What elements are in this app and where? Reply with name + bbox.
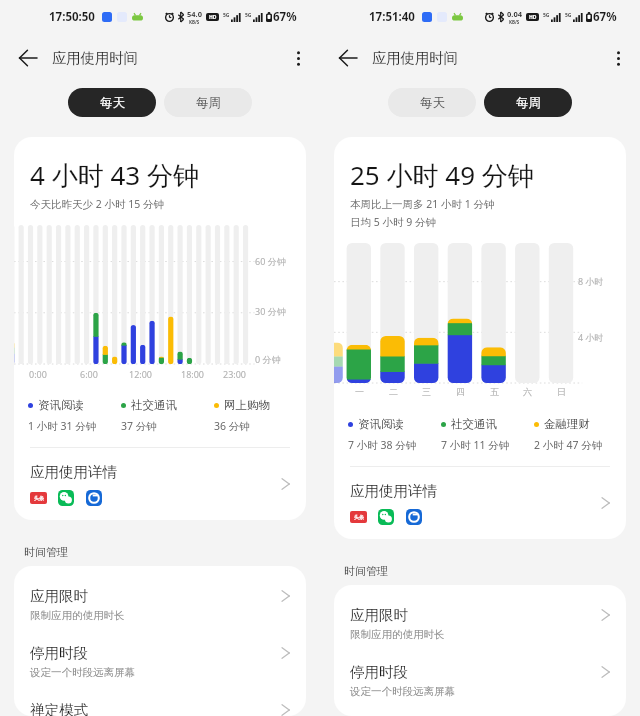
staticText: 5G <box>565 12 572 19</box>
staticText: 四 <box>456 386 465 397</box>
staticText: 8 小时 <box>578 275 604 287</box>
button[interactable]: 禅定模式 <box>14 680 306 716</box>
staticText: 应用使用时间 <box>372 49 458 67</box>
button[interactable]: 每周 <box>484 88 572 117</box>
staticText: 应用限时 <box>350 606 408 624</box>
staticText: 社交通讯 <box>131 398 177 412</box>
staticText: 30 分钟 <box>255 305 286 317</box>
staticText: 社交通讯 <box>451 417 497 431</box>
staticText: 0.04 <box>507 9 522 19</box>
staticText: 18:00 <box>181 368 205 380</box>
button[interactable]: 应用使用详情 <box>334 467 626 539</box>
button[interactable]: 应用限时 <box>334 585 626 642</box>
staticText: HD <box>209 14 217 21</box>
staticText: 12:00 <box>129 368 153 380</box>
staticText: 17:50:50 <box>49 9 95 25</box>
staticText: 54.0 <box>187 9 202 19</box>
staticText: 0:00 <box>29 368 47 380</box>
staticText: 五 <box>490 386 499 397</box>
button[interactable]: Back <box>11 41 45 75</box>
staticText: 本周比上一周多 21 小时 1 分钟 <box>350 197 495 211</box>
staticText: 头条 <box>34 495 44 501</box>
staticText: 金融理财 <box>544 417 590 431</box>
staticText: 每周 <box>196 95 221 111</box>
staticText: 资讯阅读 <box>38 398 84 412</box>
staticText: 三 <box>422 386 431 397</box>
staticText: 限制应用的使用时长 <box>30 609 125 622</box>
staticText: 5G <box>543 12 550 19</box>
staticText: 每天 <box>100 95 125 111</box>
staticText: KB/S <box>509 19 520 25</box>
staticText: 停用时段 <box>350 663 408 681</box>
staticText: 1 小时 31 分钟 <box>28 419 121 433</box>
staticText: 36 分钟 <box>214 419 306 433</box>
staticText: 应用使用详情 <box>30 463 117 481</box>
staticText: 设定一个时段远离屏幕 <box>350 685 455 698</box>
button[interactable]: 每天 <box>388 88 476 117</box>
staticText: 停用时段 <box>30 644 88 662</box>
staticText: 67% <box>273 9 297 25</box>
staticText: 17:51:40 <box>369 9 415 25</box>
staticText: 今天比昨天少 2 小时 15 分钟 <box>30 197 164 211</box>
staticText: 7 小时 11 分钟 <box>441 438 534 452</box>
staticText: 25 小时 49 分钟 <box>350 157 534 193</box>
staticText: 日 <box>557 386 566 397</box>
staticText: 0 分钟 <box>255 353 281 364</box>
staticText: 37 分钟 <box>121 419 214 433</box>
staticText: 六 <box>523 386 532 397</box>
staticText: 限制应用的使用时长 <box>350 628 445 641</box>
staticText: 设定一个时段远离屏幕 <box>30 666 135 679</box>
staticText: 5G <box>223 12 230 19</box>
button[interactable]: 每周 <box>164 88 252 117</box>
staticText: 67% <box>593 9 617 25</box>
staticText: 时间管理 <box>344 564 388 578</box>
button[interactable]: 应用使用详情 <box>14 448 306 520</box>
staticText: 网上购物 <box>224 398 270 412</box>
staticText: 应用限时 <box>30 587 88 605</box>
button[interactable]: 应用限时 <box>14 566 306 623</box>
staticText: 每周 <box>516 95 541 111</box>
button[interactable]: 停用时段 <box>14 623 306 680</box>
staticText: 禅定模式 <box>30 701 88 716</box>
staticText: 应用使用详情 <box>350 482 437 500</box>
button[interactable]: 停用时段 <box>334 642 626 699</box>
staticText: 应用使用时间 <box>52 49 138 67</box>
staticText: 4 小时 <box>578 331 604 343</box>
staticText: 6:00 <box>80 368 98 380</box>
staticText: 日均 5 小时 9 分钟 <box>350 215 436 229</box>
staticText: 一 <box>355 386 364 397</box>
staticText: 时间管理 <box>24 545 68 559</box>
staticText: 7 小时 38 分钟 <box>348 438 441 452</box>
staticText: 23:00 <box>223 368 247 380</box>
button[interactable]: 每天 <box>68 88 156 117</box>
staticText: 每天 <box>420 95 445 111</box>
staticText: HD <box>529 14 537 21</box>
staticText: 资讯阅读 <box>358 417 404 431</box>
button[interactable]: Back <box>331 41 365 75</box>
staticText: 5G <box>245 12 252 19</box>
staticText: KB/S <box>189 19 200 25</box>
button[interactable]: More options <box>281 41 315 75</box>
staticText: 60 分钟 <box>255 255 286 267</box>
staticText: 2 小时 47 分钟 <box>534 438 626 452</box>
staticText: 二 <box>389 386 398 397</box>
button[interactable]: More options <box>601 41 635 75</box>
staticText: 4 小时 43 分钟 <box>30 157 199 193</box>
staticText: 头条 <box>354 514 364 520</box>
